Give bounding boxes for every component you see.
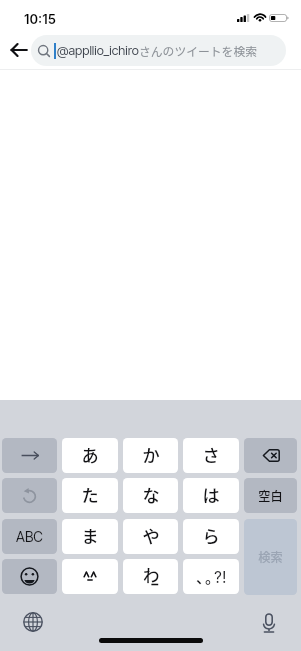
button[interactable]: Undo	[2, 478, 57, 513]
button[interactable]: 、	[183, 559, 239, 594]
staticText: や	[142, 523, 160, 548]
button[interactable]: 空白	[244, 478, 297, 513]
button[interactable]: Back	[5, 36, 32, 63]
staticText: な	[142, 482, 160, 507]
staticText: ?!	[214, 568, 227, 587]
staticText: さんのツイートを検索	[139, 42, 257, 59]
button[interactable]: や	[123, 519, 178, 554]
button[interactable]: @appllio_ichiro	[31, 35, 286, 66]
staticText: は	[202, 482, 220, 507]
button[interactable]: Emoji	[2, 559, 57, 594]
staticText: 10:15	[24, 11, 56, 27]
staticText: ま	[81, 523, 99, 548]
staticText: か	[142, 442, 160, 467]
button[interactable]: Dictation	[254, 608, 283, 637]
button[interactable]: ABC	[2, 519, 57, 554]
staticText: あ	[81, 442, 99, 467]
button[interactable]: ら	[183, 519, 239, 554]
staticText: さ	[202, 442, 220, 467]
button[interactable]: Next candidate	[2, 438, 57, 473]
staticText: 。	[205, 566, 214, 588]
button[interactable]: Delete	[244, 438, 297, 473]
button[interactable]: 検索	[244, 519, 297, 595]
button[interactable]: さ	[183, 438, 239, 473]
button[interactable]: は	[183, 478, 239, 513]
button[interactable]: た	[62, 478, 118, 513]
staticText: 、	[196, 566, 205, 588]
button[interactable]: ま	[62, 519, 118, 554]
button[interactable]: わ	[123, 559, 178, 594]
staticText: @appllio_ichiro	[57, 43, 139, 58]
staticText: た	[81, 482, 99, 507]
staticText: 検索	[258, 548, 283, 566]
button[interactable]: か	[123, 438, 178, 473]
staticText: ら	[202, 523, 220, 548]
staticText: わ	[143, 563, 160, 587]
staticText: ABC	[16, 528, 43, 545]
button[interactable]: あ	[62, 438, 118, 473]
button[interactable]: Face marks	[62, 559, 118, 594]
button[interactable]: Change keyboard	[19, 608, 47, 636]
staticText: 空白	[258, 487, 283, 505]
button[interactable]: な	[123, 478, 178, 513]
